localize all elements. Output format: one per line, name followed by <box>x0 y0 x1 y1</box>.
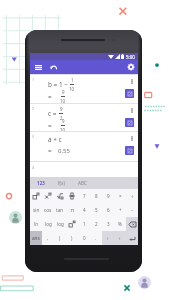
button[interactable]: × <box>114 189 126 203</box>
staticText: 2 <box>32 106 35 111</box>
button[interactable]: 3 <box>102 217 114 231</box>
staticText: ) <box>71 235 73 241</box>
button[interactable]: ) <box>66 231 78 245</box>
staticText: 4 <box>32 165 35 170</box>
button[interactable]: ABC <box>72 177 93 189</box>
button[interactable]: , <box>42 231 54 245</box>
staticText: ‹ <box>107 235 109 241</box>
button[interactable]: 1 <box>30 75 138 103</box>
button[interactable]: ln <box>30 217 42 231</box>
staticText: › <box>119 235 121 241</box>
button[interactable]: 0 <box>78 231 90 245</box>
button[interactable]: % <box>114 217 126 231</box>
staticText: f(x) <box>58 180 65 186</box>
staticText: 2 <box>60 115 63 121</box>
button[interactable]: − <box>126 203 138 217</box>
staticText: = <box>48 121 52 130</box>
button[interactable]: 2 <box>90 217 102 231</box>
button[interactable]: f(x) <box>51 177 72 189</box>
staticText: log <box>45 221 52 227</box>
staticText: = <box>48 146 52 155</box>
button[interactable]: + <box>114 203 126 217</box>
button[interactable] <box>126 217 138 231</box>
staticText: 9 <box>62 89 65 95</box>
staticText: cos <box>44 207 52 213</box>
button[interactable]: cos <box>42 203 54 217</box>
button[interactable]: log <box>54 217 66 231</box>
staticText: 8 <box>95 193 98 199</box>
button[interactable]: Show graph <box>125 146 134 155</box>
button[interactable]: 4 <box>78 203 90 217</box>
button[interactable]: ‹ <box>102 231 114 245</box>
staticText: c = <box>48 109 57 118</box>
staticText: 4 <box>83 207 86 213</box>
staticText: = <box>48 92 52 101</box>
staticText: ln <box>34 221 39 227</box>
staticText: ÷ <box>131 193 134 199</box>
staticText: 20 <box>60 127 66 133</box>
staticText: 123 <box>37 180 45 186</box>
button[interactable]: 2 <box>30 104 138 131</box>
button[interactable]: tan <box>54 203 66 217</box>
staticText: ( <box>59 235 61 241</box>
staticText: ABC <box>78 180 87 186</box>
staticText: 9 <box>60 106 63 112</box>
button[interactable]: 6 <box>102 203 114 217</box>
staticText: 9 <box>107 193 110 199</box>
button[interactable] <box>66 217 78 231</box>
button[interactable]: 3 <box>30 132 138 161</box>
button[interactable]: . <box>90 231 102 245</box>
staticText: 5 <box>95 207 98 213</box>
button[interactable]: ( <box>54 231 66 245</box>
button[interactable]: 7 <box>78 189 90 203</box>
staticText: 1 <box>83 221 86 227</box>
button[interactable]: sin <box>30 203 42 217</box>
staticText: tan <box>56 207 64 213</box>
staticText: 7 <box>83 193 86 199</box>
button[interactable]: ans <box>30 231 42 245</box>
button[interactable]: 123 <box>30 177 51 189</box>
button[interactable]: Navigation menu <box>33 60 44 74</box>
button[interactable]: π <box>66 203 78 217</box>
staticText: 9 <box>62 118 65 124</box>
staticText: a + c <box>48 135 62 144</box>
button[interactable]: More options <box>127 134 136 143</box>
staticText: log <box>57 221 64 227</box>
button[interactable]: › <box>114 231 126 245</box>
staticText: − <box>131 207 134 213</box>
button[interactable]: More options <box>127 77 136 86</box>
staticText: . <box>95 235 97 241</box>
staticText: 0 <box>83 235 86 241</box>
staticText: 2 <box>95 221 98 227</box>
staticText: 0.55 <box>58 147 70 155</box>
staticText: 1 <box>32 77 35 82</box>
button[interactable]: 9 <box>102 189 114 203</box>
button[interactable]: More options <box>127 106 136 115</box>
staticText: 10 <box>60 98 66 104</box>
staticText: π <box>71 207 74 213</box>
button[interactable]: 5 <box>90 203 102 217</box>
button[interactable]: Show graph <box>125 89 134 98</box>
staticText: 10 <box>69 86 75 92</box>
staticText: , <box>47 235 49 241</box>
button[interactable]: 8 <box>90 189 102 203</box>
button[interactable] <box>66 189 78 203</box>
button[interactable] <box>42 189 54 203</box>
button[interactable]: ÷ <box>126 189 138 203</box>
button[interactable]: Undo <box>48 60 59 74</box>
staticText: × <box>119 193 122 199</box>
button[interactable]: Settings <box>124 60 137 74</box>
staticText: + <box>119 207 122 213</box>
button[interactable] <box>30 189 42 203</box>
button[interactable] <box>54 189 66 203</box>
button[interactable]: Show graph <box>125 118 134 127</box>
staticText: % <box>118 221 122 227</box>
staticText: sin <box>33 207 40 213</box>
staticText: b = 1 − <box>48 80 68 89</box>
button[interactable]: log <box>42 217 54 231</box>
staticText: 1 <box>71 77 74 83</box>
staticText: 3 <box>32 134 35 139</box>
button[interactable]: 1 <box>78 217 90 231</box>
button[interactable] <box>126 231 138 245</box>
staticText: 3 <box>107 221 110 227</box>
